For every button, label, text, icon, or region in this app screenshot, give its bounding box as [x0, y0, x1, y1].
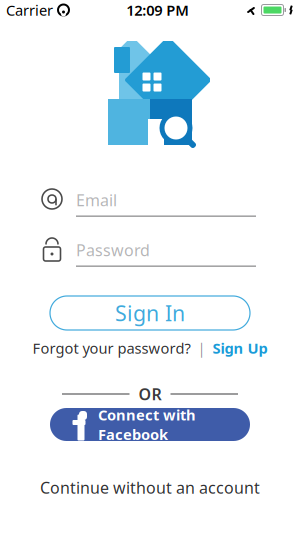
button[interactable]: Sign In	[50, 296, 250, 330]
staticText: |	[197, 338, 205, 358]
button[interactable]: Connect with Facebook	[50, 408, 250, 441]
staticText: Password	[76, 239, 150, 261]
button[interactable]: Sign Up	[212, 338, 267, 358]
button[interactable]: Continue without an account	[28, 471, 272, 504]
staticText: Continue without an account	[40, 477, 260, 498]
staticText: Sign Up	[212, 338, 267, 358]
staticText: OR	[138, 383, 161, 405]
staticText: 12:09 PM	[126, 0, 189, 20]
staticText: Email	[76, 189, 117, 211]
staticText: Connect with Facebook	[98, 405, 196, 444]
staticText: Sign In	[115, 299, 185, 327]
staticText: Forgot your password?	[32, 338, 190, 358]
button[interactable]: Forgot your password?	[32, 338, 190, 358]
staticText: Carrier	[6, 0, 53, 20]
